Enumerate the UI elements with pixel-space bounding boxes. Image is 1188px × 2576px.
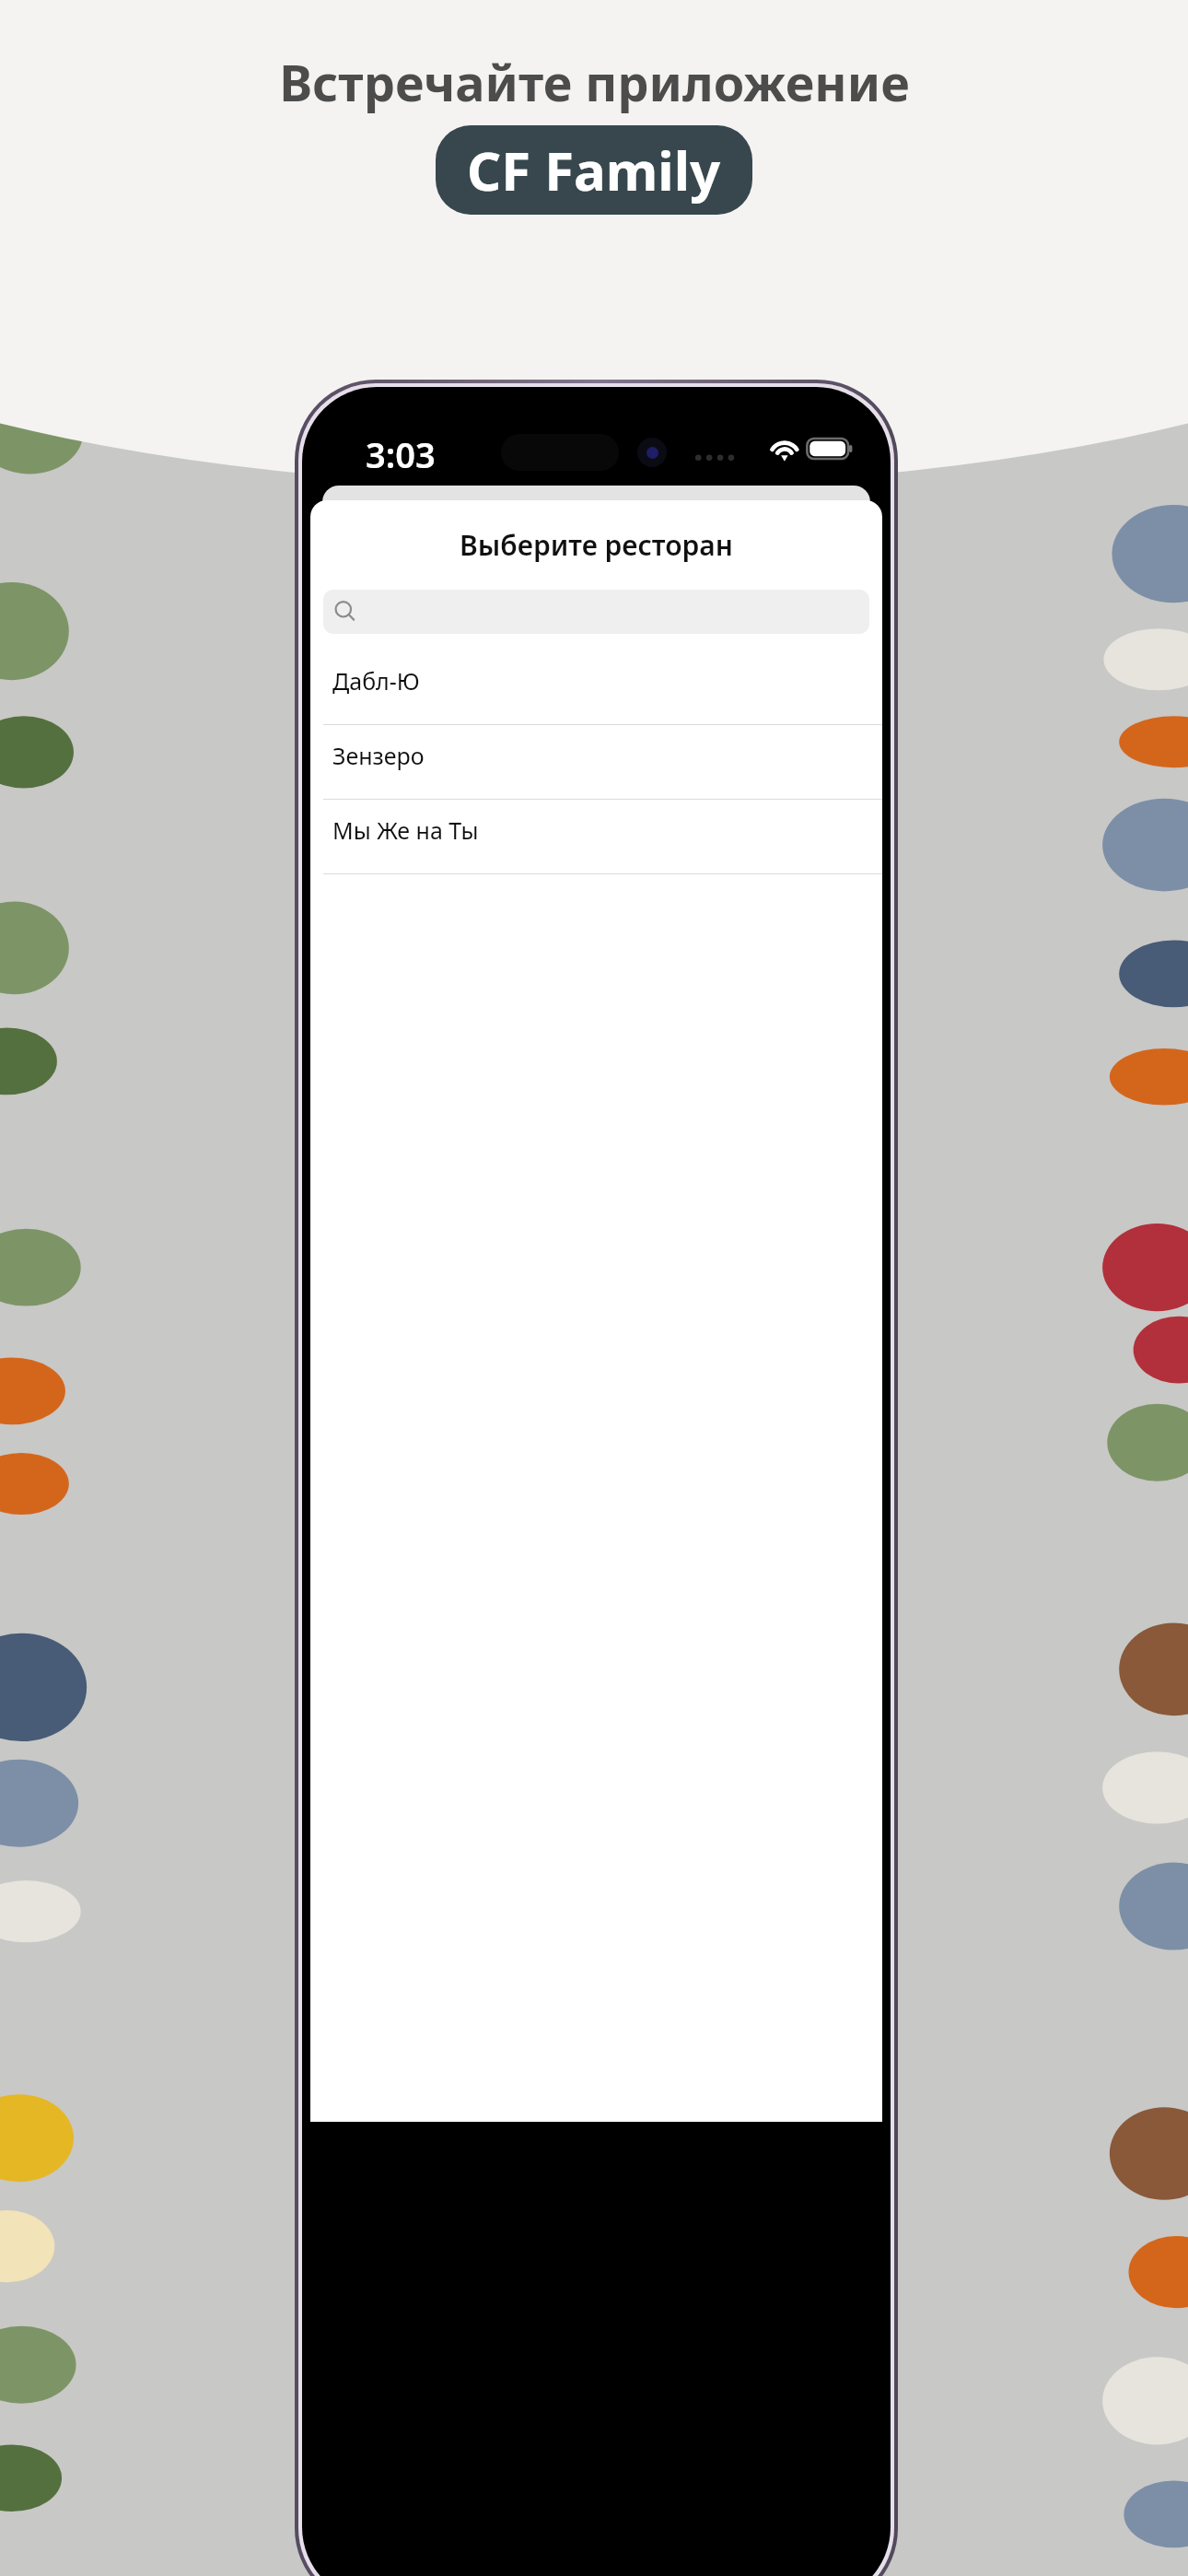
button[interactable]: Дабл-Ю bbox=[310, 650, 882, 725]
staticText: Встречайте приложение bbox=[279, 48, 910, 116]
staticText: Мы Же на Ты bbox=[332, 814, 479, 846]
staticText: Зензеро bbox=[332, 740, 425, 771]
staticText: Выберите ресторан bbox=[310, 526, 882, 564]
button[interactable]: Мы Же на Ты bbox=[310, 800, 882, 874]
button[interactable]: Поиск bbox=[323, 590, 869, 634]
staticText: 3:03 bbox=[366, 430, 436, 478]
button[interactable]: CF Family bbox=[436, 125, 752, 215]
staticText: Дабл-Ю bbox=[332, 665, 420, 697]
button[interactable]: Зензеро bbox=[310, 725, 882, 800]
staticText: CF Family bbox=[467, 134, 721, 206]
